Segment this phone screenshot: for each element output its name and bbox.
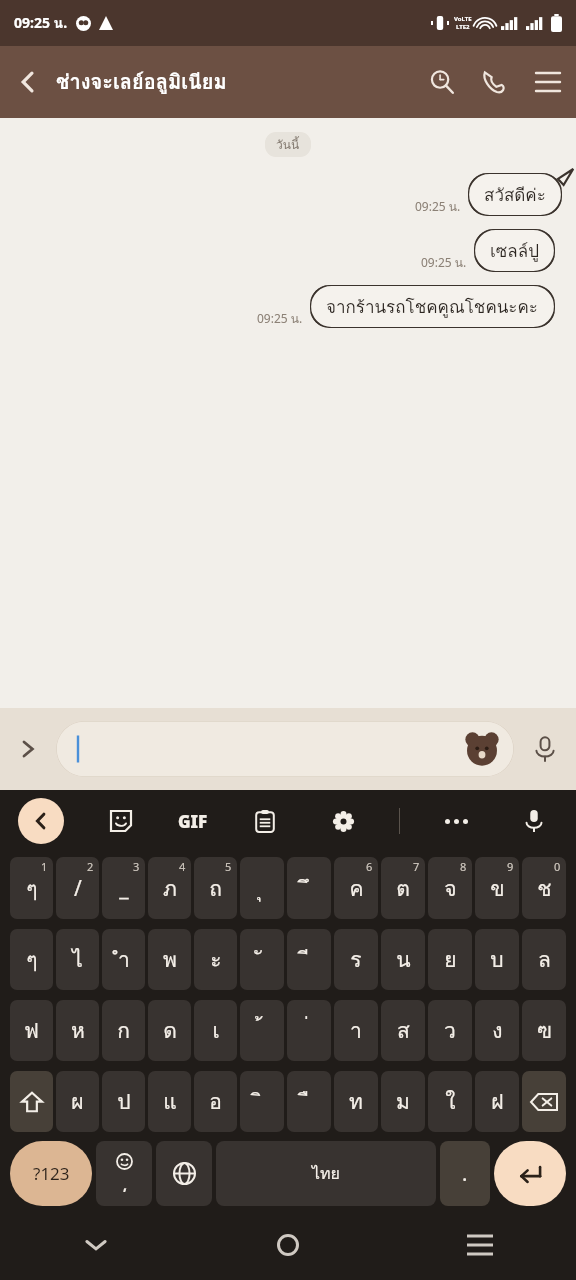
button[interactable]: ฝ (475, 1071, 519, 1132)
button[interactable]: ฃ (522, 1000, 566, 1061)
button[interactable]: / (56, 857, 99, 919)
button[interactable]: Back (18, 798, 64, 844)
staticText: / (74, 874, 82, 903)
button[interactable]: ใ (428, 1071, 472, 1132)
staticText: ภ (163, 872, 177, 905)
button[interactable]: ส (381, 1000, 425, 1061)
staticText: ๆ (26, 943, 38, 976)
button[interactable]: จ (428, 857, 472, 919)
button[interactable]: เ (194, 1000, 237, 1061)
button[interactable]: Shift (10, 1071, 53, 1132)
staticText: 2 (87, 859, 94, 874)
staticText: ส (397, 1014, 410, 1047)
button[interactable]: ๆ (10, 929, 53, 990)
staticText: 1 (41, 859, 48, 874)
button[interactable]: ร (334, 929, 378, 990)
button[interactable]: ง (475, 1000, 519, 1061)
button[interactable]: า (334, 1000, 378, 1061)
button[interactable]: น (381, 929, 425, 990)
button[interactable]: เซลล์ปู (474, 229, 555, 272)
button[interactable]: อ (194, 1071, 237, 1132)
button[interactable]: _ (102, 857, 145, 919)
button[interactable]: พ (148, 929, 191, 990)
button[interactable]: บ (475, 929, 519, 990)
staticText: _ (119, 874, 129, 903)
button[interactable]: ด (148, 1000, 191, 1061)
button[interactable]: Recents (384, 1210, 576, 1280)
staticText: 09:25 น. (421, 253, 467, 272)
button[interactable]: ช (522, 857, 566, 919)
staticText: จากร้านรถโชคคูณโชคนะคะ (326, 293, 539, 320)
button[interactable]: GIF (178, 799, 208, 843)
button[interactable]: Call (468, 56, 520, 108)
button[interactable]: ้ (240, 1000, 284, 1061)
button[interactable]: ?123 (10, 1141, 92, 1206)
button[interactable]: ฟ (10, 1000, 53, 1061)
button[interactable]: ข (475, 857, 519, 919)
button[interactable]: ห (56, 1000, 99, 1061)
staticText: ช่างจะเลย์อลูมิเนียม (56, 66, 416, 98)
button[interactable]: ไ (56, 929, 99, 990)
button[interactable]: ี (287, 929, 331, 990)
staticText: LTE2 (456, 23, 470, 31)
button[interactable]: ึ (287, 857, 331, 919)
staticText: ฝ (491, 1085, 504, 1118)
button[interactable]: ถ (194, 857, 237, 919)
button[interactable]: Voice message (514, 718, 576, 780)
button[interactable]: Hide keyboard (0, 1210, 192, 1280)
button[interactable]: ภ (148, 857, 191, 919)
button[interactable]: สวัสดีค่ะ (468, 173, 562, 216)
button[interactable]: Sticker (99, 799, 143, 843)
staticText: ก (117, 1014, 130, 1047)
button[interactable]: Voice input (512, 799, 556, 843)
button[interactable]: ไทย (216, 1141, 436, 1206)
button[interactable]: แ (148, 1071, 191, 1132)
button[interactable]: ล (522, 929, 566, 990)
button[interactable]: Search (416, 56, 468, 108)
staticText: 4 (179, 859, 186, 874)
button[interactable]: Stickers (464, 731, 500, 767)
staticText: วันนี้ (276, 135, 300, 154)
button[interactable]: ั (240, 929, 284, 990)
button[interactable]: ป (102, 1071, 145, 1132)
staticText: ล (538, 943, 551, 976)
button[interactable]: Back (0, 54, 56, 110)
button[interactable]: . (440, 1141, 490, 1206)
button[interactable]: Emoji (96, 1141, 152, 1206)
button[interactable]: ิ (240, 1071, 284, 1132)
staticText: . (462, 1160, 468, 1187)
button[interactable]: ค (334, 857, 378, 919)
button[interactable]: ุ (240, 857, 284, 919)
button[interactable]: ม (381, 1071, 425, 1132)
staticText: ท (349, 1085, 363, 1118)
button[interactable]: ก (102, 1000, 145, 1061)
button[interactable]: Enter (494, 1141, 566, 1206)
button[interactable]: ว (428, 1000, 472, 1061)
button[interactable]: ย (428, 929, 472, 990)
button[interactable]: More (434, 799, 478, 843)
staticText: ป (117, 1085, 131, 1118)
button[interactable]: ำ (102, 929, 145, 990)
button[interactable]: ๆ (10, 857, 53, 919)
button[interactable]: Backspace (522, 1071, 566, 1132)
button[interactable]: Language (156, 1141, 212, 1206)
button[interactable]: Settings (321, 799, 365, 843)
button[interactable]: ่ (287, 1000, 331, 1061)
button[interactable]: ะ (194, 929, 237, 990)
staticText: 7 (413, 859, 420, 874)
button[interactable]: ผ (56, 1071, 99, 1132)
staticText: VoLTE (454, 15, 472, 23)
staticText: เ (212, 1014, 220, 1047)
button[interactable]: ท (334, 1071, 378, 1132)
button[interactable]: ต (381, 857, 425, 919)
button[interactable]: Clipboard (243, 799, 287, 843)
button[interactable]: Stickers (56, 721, 514, 777)
button[interactable]: จากร้านรถโชคคูณโชคนะคะ (310, 285, 555, 328)
staticText: น (396, 943, 411, 976)
button[interactable]: Expand (0, 721, 56, 777)
button[interactable]: ื (287, 1071, 331, 1132)
button[interactable]: Home (192, 1210, 384, 1280)
staticText: ด (163, 1014, 177, 1047)
button[interactable]: Menu (520, 54, 576, 110)
staticText: อ (209, 1085, 222, 1118)
